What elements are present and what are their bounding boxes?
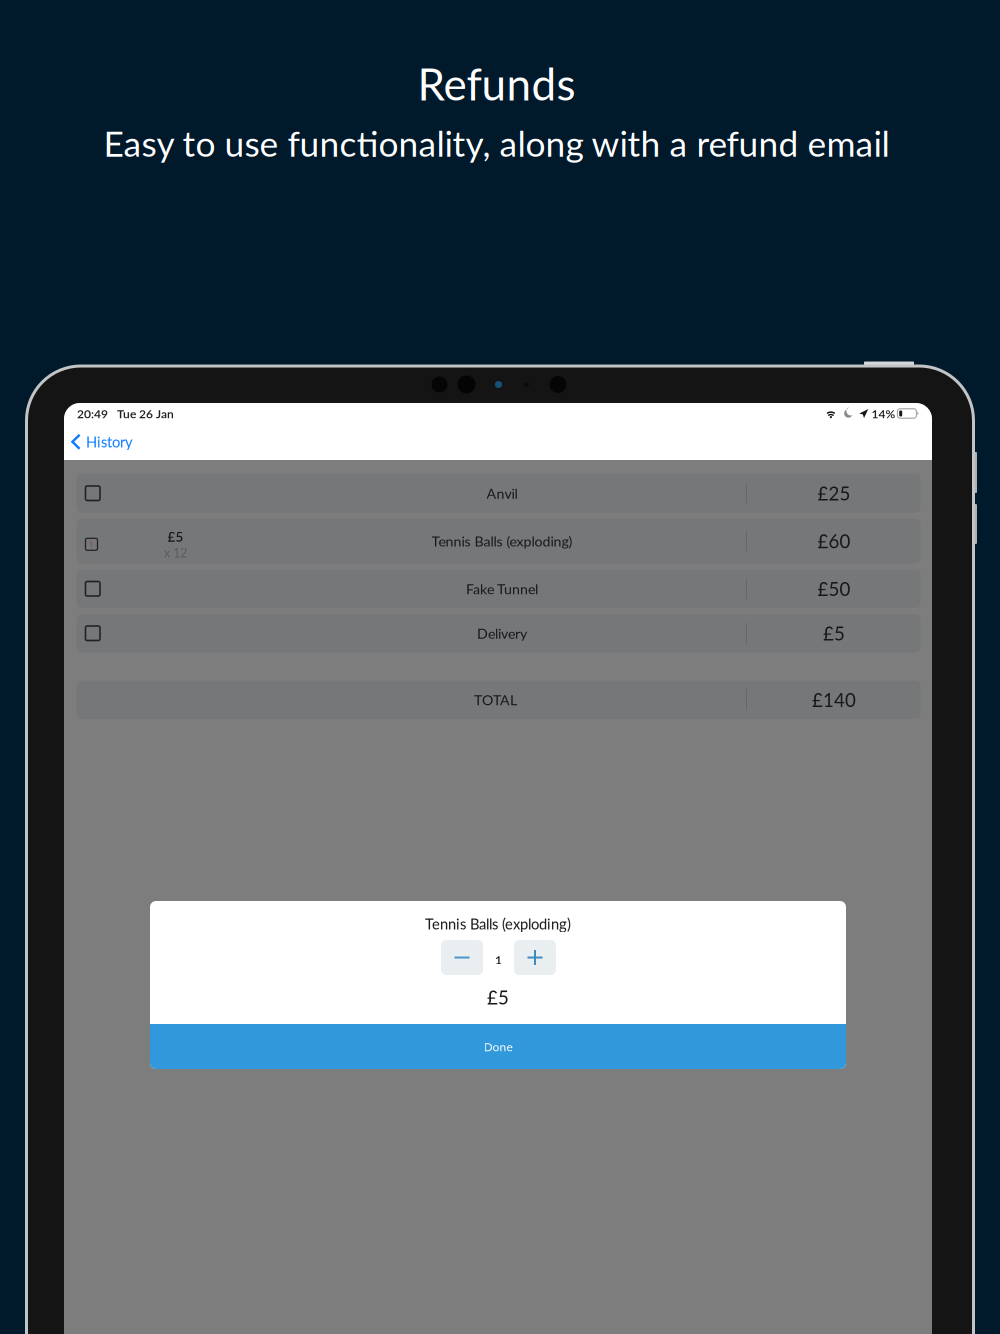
staticText: Refunds xyxy=(417,57,575,110)
staticText: Anvil xyxy=(486,485,517,502)
staticText: Easy to use functionality, along with a … xyxy=(103,122,889,164)
staticText: 1 xyxy=(495,952,502,967)
staticText: £5 xyxy=(823,622,845,644)
button[interactable]: Delivery xyxy=(76,614,920,652)
staticText: Tennis Balls (exploding) xyxy=(431,532,572,549)
button[interactable]: Anvil xyxy=(76,474,920,512)
staticText: Delivery xyxy=(477,625,527,642)
staticText: 14% xyxy=(871,406,895,421)
staticText: 1 xyxy=(89,539,94,549)
button[interactable]: Fake Tunnel xyxy=(76,569,920,608)
button[interactable]: 1 xyxy=(76,518,920,563)
staticText: Done xyxy=(483,1039,512,1054)
staticText: x 12 xyxy=(164,545,187,560)
staticText: History xyxy=(86,433,133,451)
staticText: £5 xyxy=(487,986,509,1008)
staticText: £50 xyxy=(817,577,850,600)
button[interactable]: Decrease quantity xyxy=(441,940,483,975)
staticText: 20:49 xyxy=(77,406,108,421)
button[interactable]: History xyxy=(65,425,139,459)
button[interactable]: Increase quantity xyxy=(514,940,556,975)
staticText: £5 xyxy=(167,528,183,544)
staticText: £25 xyxy=(817,482,850,504)
staticText: Fake Tunnel xyxy=(466,580,538,597)
staticText: £140 xyxy=(812,688,856,711)
staticText: £60 xyxy=(817,530,850,552)
staticText: Tennis Balls (exploding) xyxy=(425,915,571,933)
button[interactable]: Done xyxy=(150,1024,846,1069)
staticText: Tue 26 Jan xyxy=(117,406,174,421)
staticText: TOTAL xyxy=(474,691,517,708)
